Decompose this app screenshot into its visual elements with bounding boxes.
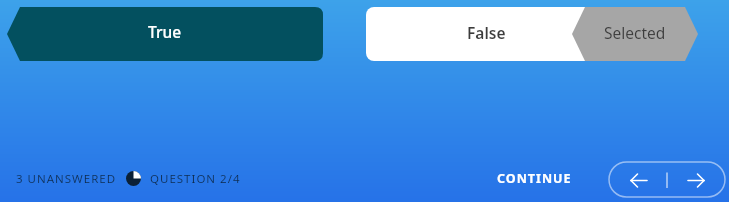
button[interactable]: Next question — [667, 162, 725, 197]
button[interactable]: True — [7, 7, 323, 61]
staticText: True — [148, 21, 182, 42]
button[interactable]: False — [366, 7, 672, 61]
button[interactable]: CONTINUE — [490, 162, 579, 197]
staticText: QUESTION 2/4 — [150, 171, 241, 187]
staticText: 3 UNANSWERED — [16, 171, 117, 187]
button[interactable]: Selected — [572, 7, 698, 61]
staticText: Selected — [604, 22, 666, 43]
staticText: CONTINUE — [497, 170, 572, 187]
button[interactable]: Previous question — [609, 162, 667, 197]
staticText: False — [467, 22, 506, 43]
